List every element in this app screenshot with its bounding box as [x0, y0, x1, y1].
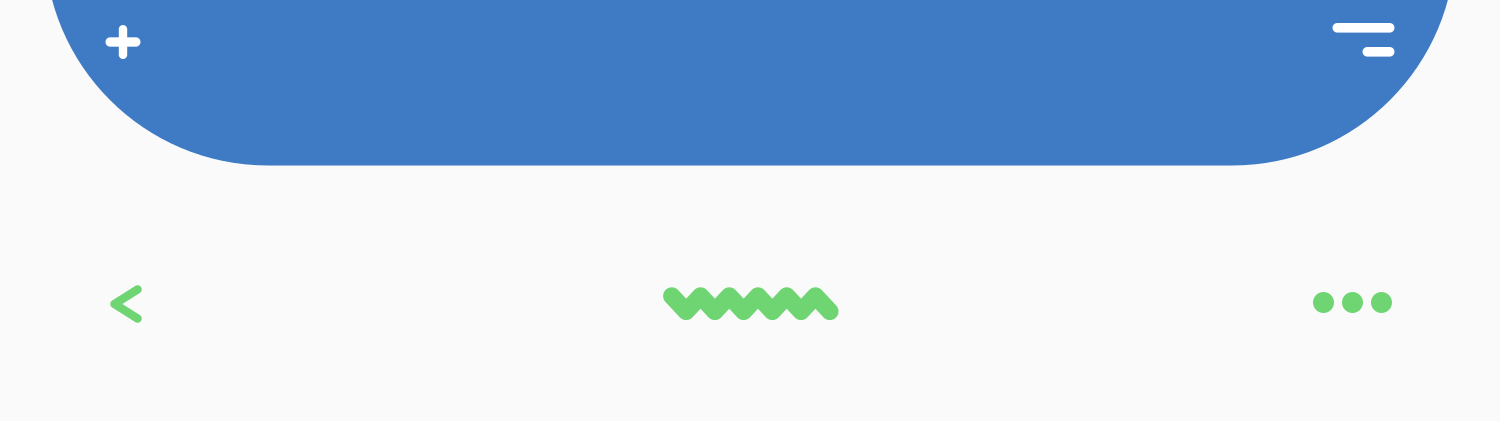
button[interactable]: Add [90, 9, 156, 75]
button[interactable]: Signature [638, 266, 864, 342]
button[interactable]: More [1282, 264, 1392, 340]
button[interactable]: Filter [1310, 7, 1394, 73]
button[interactable]: Back [88, 266, 164, 342]
